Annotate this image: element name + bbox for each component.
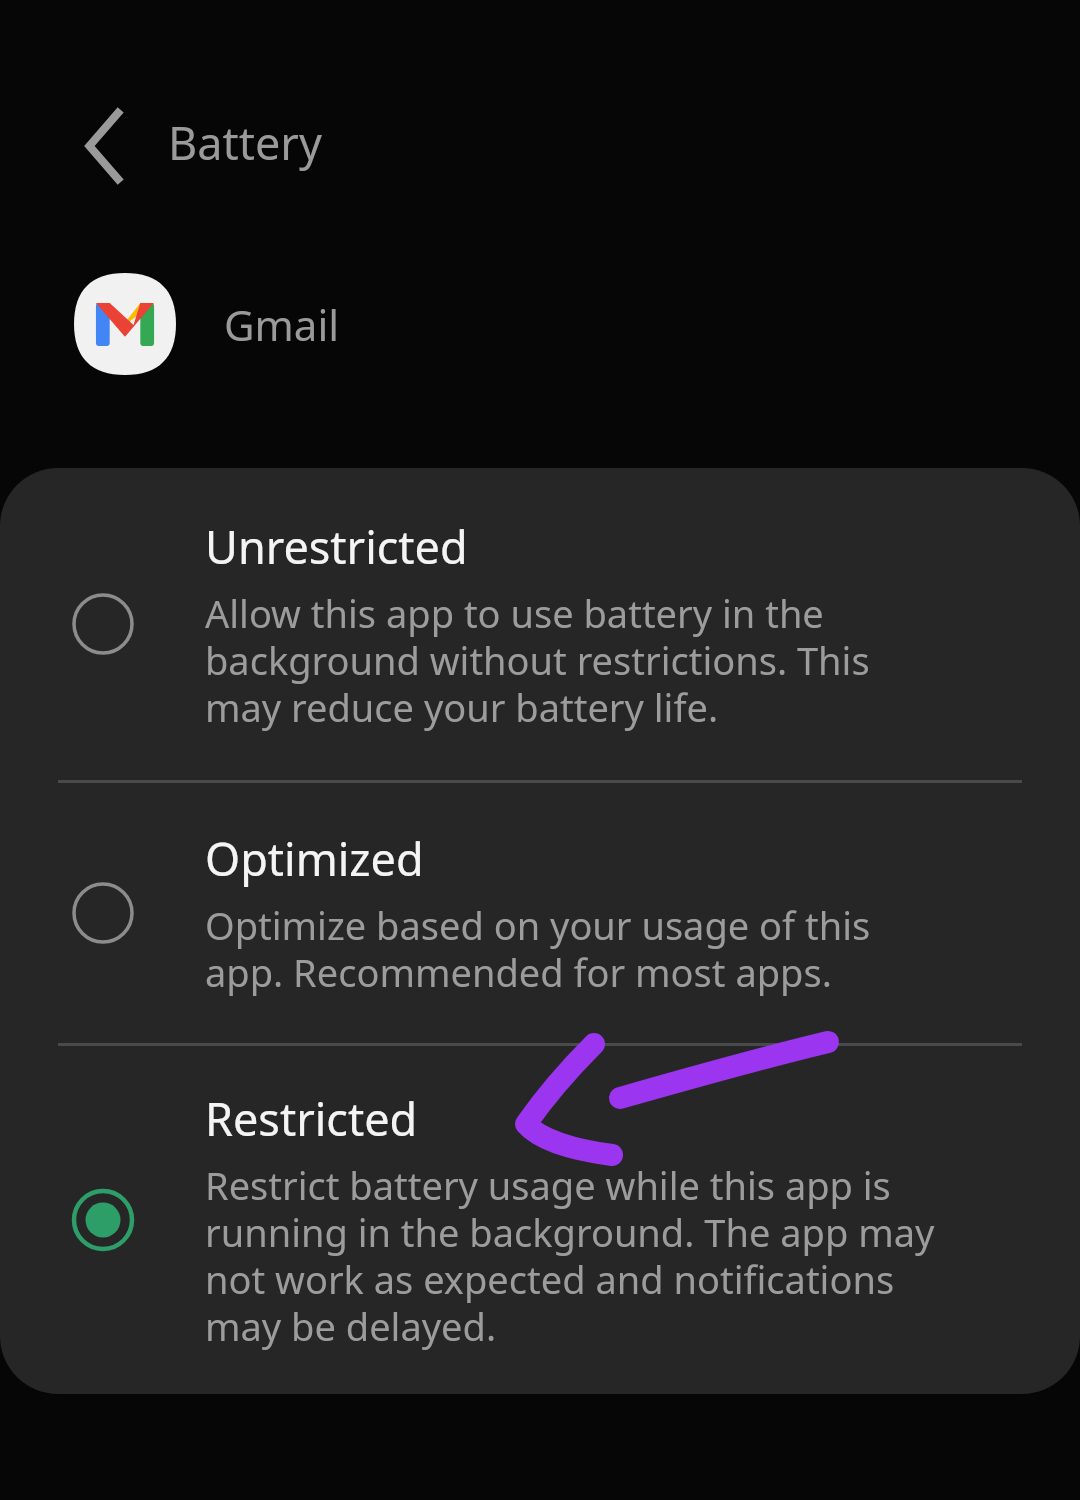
staticText: Optimized bbox=[205, 828, 424, 889]
staticText: Restrict battery usage while this app is… bbox=[205, 1159, 935, 1352]
staticText: Optimize based on your usage of this app… bbox=[205, 899, 871, 998]
staticText: Restricted bbox=[205, 1088, 418, 1149]
button[interactable]: Optimized bbox=[0, 783, 1080, 1043]
staticText: Battery bbox=[168, 112, 322, 173]
staticText: Gmail bbox=[224, 296, 340, 353]
button[interactable]: Back bbox=[58, 100, 146, 192]
button[interactable]: Unrestricted bbox=[0, 468, 1080, 780]
staticText: Allow this app to use battery in the bac… bbox=[205, 587, 870, 733]
button[interactable]: Restricted bbox=[0, 1046, 1080, 1394]
staticText: Unrestricted bbox=[205, 516, 468, 577]
button[interactable]: Gmail bbox=[74, 272, 474, 376]
